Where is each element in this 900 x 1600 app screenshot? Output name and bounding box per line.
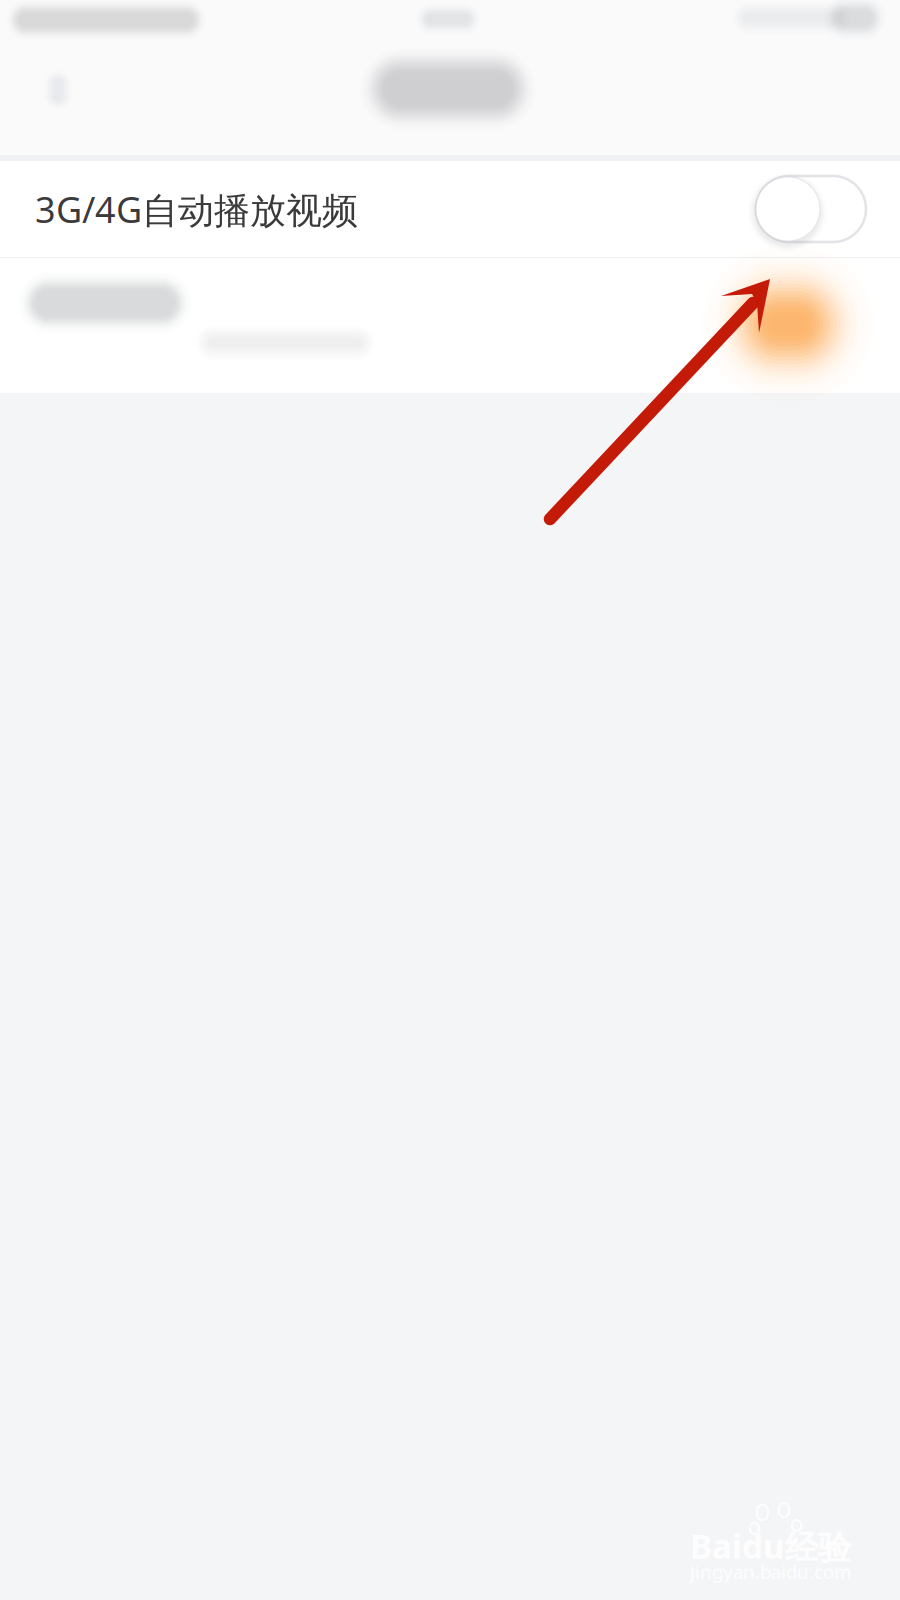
button[interactable]: Back xyxy=(0,0,43,55)
staticText: 3G/4G自动播放视频 xyxy=(35,185,358,233)
staticText: Baidu经验 xyxy=(690,1524,851,1568)
button[interactable]: 3G/4G自动播放视频 xyxy=(0,161,900,257)
